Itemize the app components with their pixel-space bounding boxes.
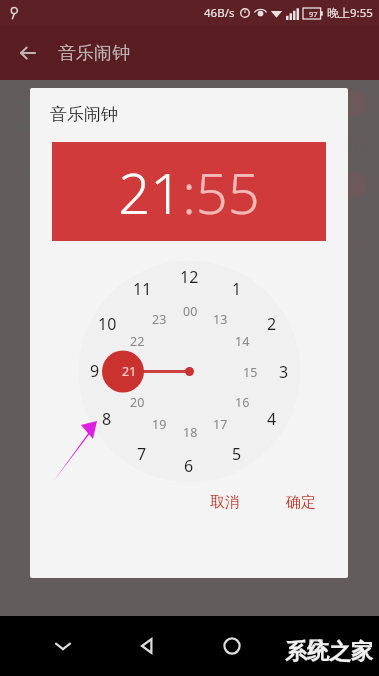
staticText: 6 [184,455,194,477]
staticText: 20 [130,394,145,411]
staticText: 4 [267,408,277,430]
staticText: 取消 [210,493,240,512]
button[interactable]: Back [125,624,169,668]
staticText: 音乐闹钟 [50,104,118,125]
staticText: 5 [232,443,242,465]
staticText: 1 [232,278,242,300]
staticText: 11 [133,278,152,300]
button[interactable]: Hide [41,624,85,668]
staticText: 3 [279,361,289,383]
staticText: 铃声 [14,158,44,177]
button[interactable]: Home [210,624,254,668]
staticText: 22 [130,333,145,350]
staticText: 46B/s [204,5,235,21]
button[interactable]: 21:55 [52,142,326,241]
staticText: 12 [180,266,199,288]
button[interactable]: 取消 [196,485,254,520]
staticText: 重复 [14,205,44,224]
staticText: 2 [14,86,37,140]
staticText: 15 [243,364,258,381]
button[interactable]: 确定 [272,485,330,520]
staticText: 8 [102,408,112,430]
staticText: 9 [90,360,100,382]
staticText: 97 [309,9,318,19]
staticText: 19 [152,416,167,433]
staticText: 确定 [286,493,316,512]
button[interactable]: Back [10,35,46,71]
staticText: 21 [122,363,137,380]
button[interactable]: Recents [294,624,338,668]
staticText: 7 [137,443,147,465]
staticText: 晚上9:55 [327,5,373,21]
staticText: 17 [213,416,228,433]
staticText: 21:55 [118,154,260,230]
staticText: 23 [152,311,167,328]
staticText: 2 [267,313,277,335]
staticText: 16 [235,394,250,411]
staticText: 铃声 [345,137,373,155]
staticText: 10 [98,313,117,335]
staticText: 13 [213,311,228,328]
staticText: 00 [183,303,198,320]
staticText: 系统之家 [285,638,373,666]
staticText: 音乐闹钟 [58,42,130,65]
staticText: 14 [235,333,250,350]
staticText: 18 [183,424,198,441]
